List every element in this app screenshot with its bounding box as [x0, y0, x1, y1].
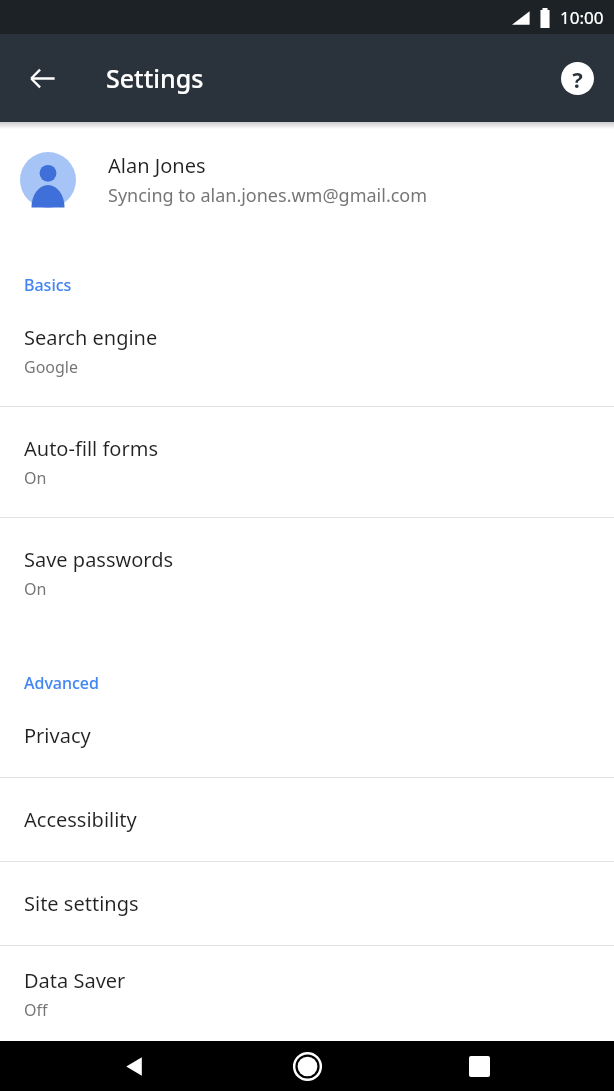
staticText: Settings [106, 61, 204, 95]
staticText: Auto-fill forms [24, 435, 158, 462]
button[interactable]: Alan Jones [0, 129, 614, 230]
button[interactable]: Save passwords [0, 518, 614, 628]
staticText: ? [572, 64, 583, 94]
staticText: Save passwords [24, 546, 174, 573]
button[interactable]: Search engine [0, 296, 614, 406]
staticText: Off [24, 999, 48, 1021]
staticText: Basics [24, 274, 72, 296]
button[interactable]: Privacy [0, 694, 614, 777]
button[interactable]: Back [10, 46, 74, 110]
staticText: Privacy [24, 722, 91, 749]
button[interactable]: Home [280, 1041, 334, 1091]
staticText: Syncing to alan.jones.wm@gmail.com [108, 183, 428, 208]
button[interactable]: Recent apps [452, 1041, 506, 1091]
staticText: Site settings [24, 890, 139, 917]
button[interactable]: Accessibility [0, 778, 614, 861]
staticText: Alan Jones [108, 152, 206, 179]
button[interactable]: Site settings [0, 862, 614, 945]
staticText: Accessibility [24, 806, 137, 833]
button[interactable]: Back [108, 1041, 162, 1091]
staticText: On [24, 467, 47, 489]
staticText: Google [24, 356, 79, 378]
staticText: Search engine [24, 324, 158, 351]
button[interactable]: Help [546, 47, 608, 109]
button[interactable]: Auto-fill forms [0, 407, 614, 517]
staticText: Data Saver [24, 967, 126, 994]
button[interactable]: Data Saver [0, 946, 614, 1041]
staticText: Advanced [24, 672, 99, 694]
staticText: 10:00 [560, 6, 604, 29]
staticText: On [24, 578, 47, 600]
